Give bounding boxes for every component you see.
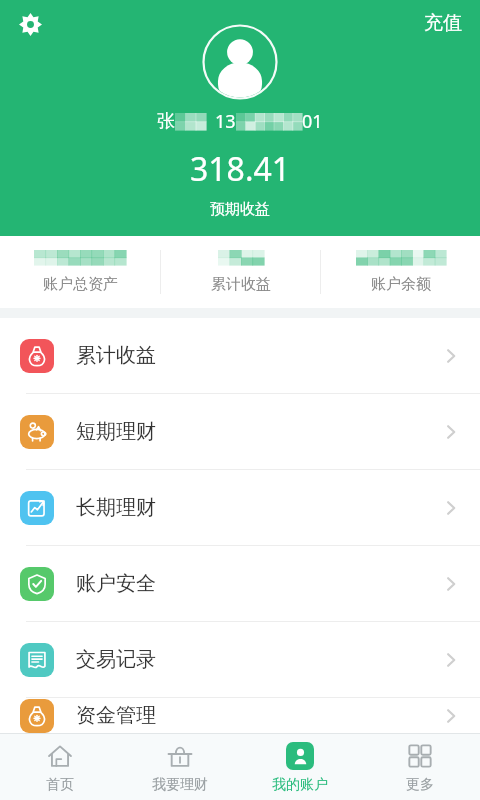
button[interactable]: 账户余额 (321, 236, 480, 308)
button[interactable]: 首页 (0, 734, 120, 800)
button[interactable]: 账户安全 (0, 546, 480, 621)
staticText: 累计收益 (76, 343, 156, 368)
staticText: 更多 (406, 776, 434, 794)
button[interactable]: 充值 (412, 2, 474, 44)
staticText: 我的账户 (272, 776, 328, 794)
button[interactable]: Settings (8, 2, 52, 46)
staticText: 账户总资产 (43, 275, 118, 294)
staticText: 13 (215, 109, 236, 134)
button[interactable]: 账户总资产 (0, 236, 160, 308)
button[interactable]: 我的账户 (240, 734, 360, 800)
staticText: 长期理财 (76, 495, 156, 520)
button[interactable]: 短期理财 (0, 394, 480, 469)
button[interactable]: 累计收益 (0, 318, 480, 393)
staticText: 交易记录 (76, 647, 156, 672)
button[interactable]: 累计收益 (161, 236, 320, 308)
staticText: 累计收益 (211, 275, 271, 294)
button[interactable]: 我要理财 (120, 734, 240, 800)
staticText: 预期收益 (210, 200, 270, 219)
button[interactable]: 资金管理 (0, 698, 480, 733)
staticText: 账户安全 (76, 571, 156, 596)
staticText: 首页 (46, 776, 74, 794)
button[interactable]: 更多 (360, 734, 480, 800)
staticText: 01 (302, 109, 323, 134)
button[interactable]: 长期理财 (0, 470, 480, 545)
staticText: 充值 (424, 11, 462, 35)
staticText: 账户余额 (371, 275, 431, 294)
staticText: 张 (157, 110, 175, 133)
staticText: 短期理财 (76, 419, 156, 444)
staticText: 我要理财 (152, 776, 208, 794)
staticText: 资金管理 (76, 703, 156, 728)
staticText: 318.41 (190, 147, 291, 191)
button[interactable]: 交易记录 (0, 622, 480, 697)
